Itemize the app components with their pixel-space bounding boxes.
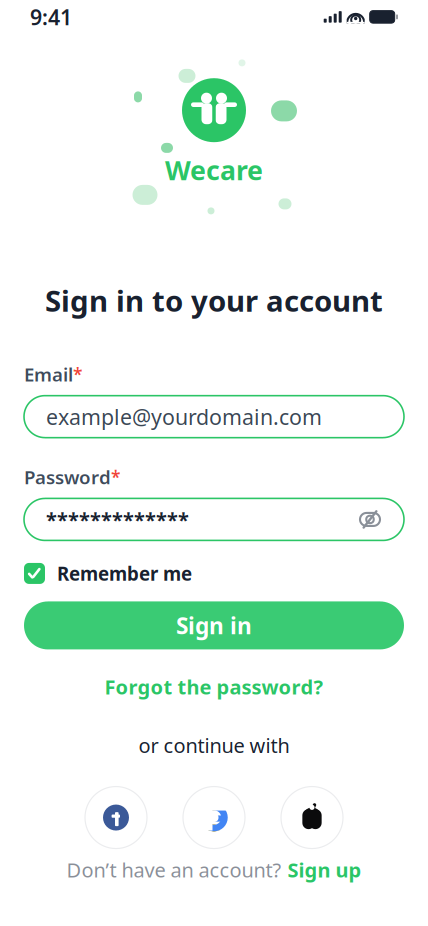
- staticText: Sign in: [176, 610, 252, 640]
- button[interactable]: Continue with Google: [183, 786, 245, 848]
- staticText: *: [111, 465, 120, 488]
- button[interactable]: Forgot the password?: [88, 667, 339, 706]
- staticText: Forgot the password?: [104, 673, 323, 700]
- staticText: or continue with: [138, 732, 289, 759]
- staticText: Don’t have an account?: [66, 856, 281, 883]
- staticText: *************: [46, 506, 189, 533]
- button[interactable]: Sign in: [24, 601, 404, 649]
- staticText: Sign in to your account: [45, 281, 383, 320]
- staticText: Email: [24, 362, 73, 387]
- staticText: Remember me: [57, 561, 192, 586]
- staticText: example@yourdomain.com: [46, 402, 322, 431]
- staticText: Password: [24, 465, 111, 489]
- staticText: Wecare: [165, 152, 263, 188]
- button[interactable]: Remember me: [0, 558, 428, 588]
- staticText: *: [73, 363, 82, 386]
- button[interactable]: Continue with Facebook: [85, 786, 147, 848]
- staticText: Sign up: [287, 856, 361, 883]
- button[interactable]: Continue with Apple: [281, 786, 343, 848]
- button[interactable]: example@yourdomain.com: [24, 396, 404, 438]
- staticText: 9:41: [30, 3, 72, 31]
- button[interactable]: Sign up: [287, 856, 361, 883]
- button[interactable]: *************: [24, 498, 404, 540]
